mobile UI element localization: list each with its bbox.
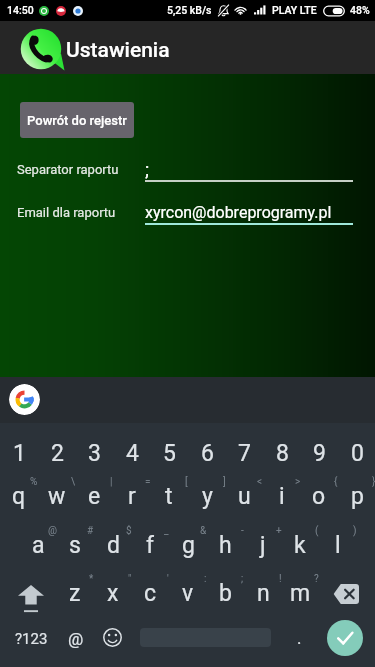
button[interactable]: 8 xyxy=(263,432,301,464)
button[interactable]: 4 xyxy=(113,432,151,464)
button[interactable]: - xyxy=(206,521,244,565)
button[interactable]: _ xyxy=(131,521,169,565)
button[interactable]: . xyxy=(280,616,318,663)
button[interactable]: 2 xyxy=(38,432,76,464)
staticText: xyrcon@dobreprogramy.pl xyxy=(145,203,332,222)
staticText: \ xyxy=(71,476,76,488)
button[interactable]: ? xyxy=(281,569,319,613)
staticText: ; xyxy=(241,573,244,585)
staticText: _ xyxy=(164,525,169,537)
staticText: m xyxy=(290,580,311,607)
button[interactable]: " xyxy=(94,569,132,613)
button[interactable]: ! xyxy=(244,569,282,613)
button[interactable]: 3 xyxy=(75,432,113,464)
button[interactable]: ' xyxy=(131,569,169,613)
staticText: } xyxy=(372,476,375,488)
staticText: o xyxy=(312,483,326,510)
staticText: ( xyxy=(315,525,319,537)
staticText: < xyxy=(257,476,263,488)
staticText: ] xyxy=(223,476,226,488)
staticText: Separator raportu xyxy=(17,162,119,177)
button[interactable]: 9 xyxy=(300,432,338,464)
button[interactable]: 7 xyxy=(225,432,263,464)
button[interactable]: @ xyxy=(61,616,91,663)
button[interactable]: Emoji xyxy=(93,616,131,663)
staticText: n xyxy=(257,580,270,607)
staticText: s xyxy=(69,532,81,559)
staticText: - xyxy=(241,525,244,537)
staticText: 5,25 kB/s xyxy=(167,4,212,16)
button[interactable]: : xyxy=(169,569,207,613)
button[interactable]: ?123 xyxy=(0,616,61,663)
button[interactable]: # xyxy=(56,521,94,565)
staticText: l xyxy=(335,532,341,559)
staticText: r xyxy=(128,483,136,510)
staticText: 3 xyxy=(88,440,101,467)
button[interactable]: * xyxy=(56,569,94,613)
button[interactable]: { xyxy=(300,472,338,516)
staticText: PLAY LTE xyxy=(272,4,317,16)
staticText: 14:50 xyxy=(7,4,34,16)
staticText: @ xyxy=(48,525,57,537)
staticText: ' xyxy=(167,573,169,585)
button[interactable]: } xyxy=(338,472,375,516)
staticText: 8 xyxy=(276,440,289,467)
button[interactable]: Powrót do rejestr xyxy=(20,102,134,138)
button[interactable]: + xyxy=(244,521,282,565)
button[interactable]: 5 xyxy=(150,432,188,464)
button[interactable]: ) xyxy=(319,521,357,565)
staticText: p xyxy=(351,483,364,510)
staticText: b xyxy=(219,580,232,607)
staticText: i xyxy=(279,483,285,510)
button[interactable]: $ xyxy=(94,521,132,565)
button[interactable]: | xyxy=(75,472,113,516)
staticText: 2 xyxy=(51,440,64,467)
staticText: 6 xyxy=(201,440,214,467)
staticText: ?123 xyxy=(15,630,48,648)
button[interactable]: ( xyxy=(281,521,319,565)
button[interactable]: 6 xyxy=(188,432,226,464)
staticText: 1 xyxy=(13,440,26,467)
button[interactable]: > xyxy=(263,472,301,516)
button[interactable]: Backspace xyxy=(319,555,375,605)
staticText: $ xyxy=(126,525,132,537)
button[interactable]: @ xyxy=(19,521,57,565)
staticText: @ xyxy=(68,629,84,649)
staticText: ; xyxy=(145,158,150,180)
button[interactable]: [ xyxy=(150,472,188,516)
staticText: q xyxy=(12,483,26,510)
button[interactable]: 1 xyxy=(0,432,38,464)
staticText: k xyxy=(294,532,306,559)
staticText: 4 xyxy=(126,440,139,467)
staticText: = xyxy=(145,476,151,488)
staticText: % xyxy=(30,476,38,488)
staticText: e xyxy=(88,483,101,510)
button[interactable]: = xyxy=(113,472,151,516)
button[interactable]: Enter xyxy=(327,620,363,656)
staticText: ! xyxy=(279,573,282,585)
staticText: > xyxy=(295,476,301,488)
button[interactable]: ; xyxy=(206,569,244,613)
staticText: 9 xyxy=(313,440,326,467)
button[interactable]: 0 xyxy=(338,432,375,464)
button[interactable]: Shift xyxy=(0,555,56,605)
staticText: a xyxy=(32,532,45,559)
staticText: Email dla raportu xyxy=(17,205,116,220)
button[interactable]: App icon xyxy=(19,27,63,71)
button[interactable]: \ xyxy=(38,472,76,516)
staticText: y xyxy=(202,483,213,510)
staticText: Ustawienia xyxy=(66,38,170,63)
staticText: 5 xyxy=(163,440,176,467)
staticText: * xyxy=(89,573,94,585)
button[interactable]: & xyxy=(169,521,207,565)
button[interactable]: % xyxy=(0,472,38,516)
button[interactable]: Google xyxy=(9,384,40,415)
staticText: ? xyxy=(314,573,319,585)
staticText: h xyxy=(219,532,232,559)
staticText: t xyxy=(165,483,173,510)
button[interactable]: ] xyxy=(188,472,226,516)
button[interactable]: Email dla raportu xyxy=(0,197,375,227)
button[interactable]: Separator raportu xyxy=(0,154,375,184)
button[interactable]: < xyxy=(225,472,263,516)
